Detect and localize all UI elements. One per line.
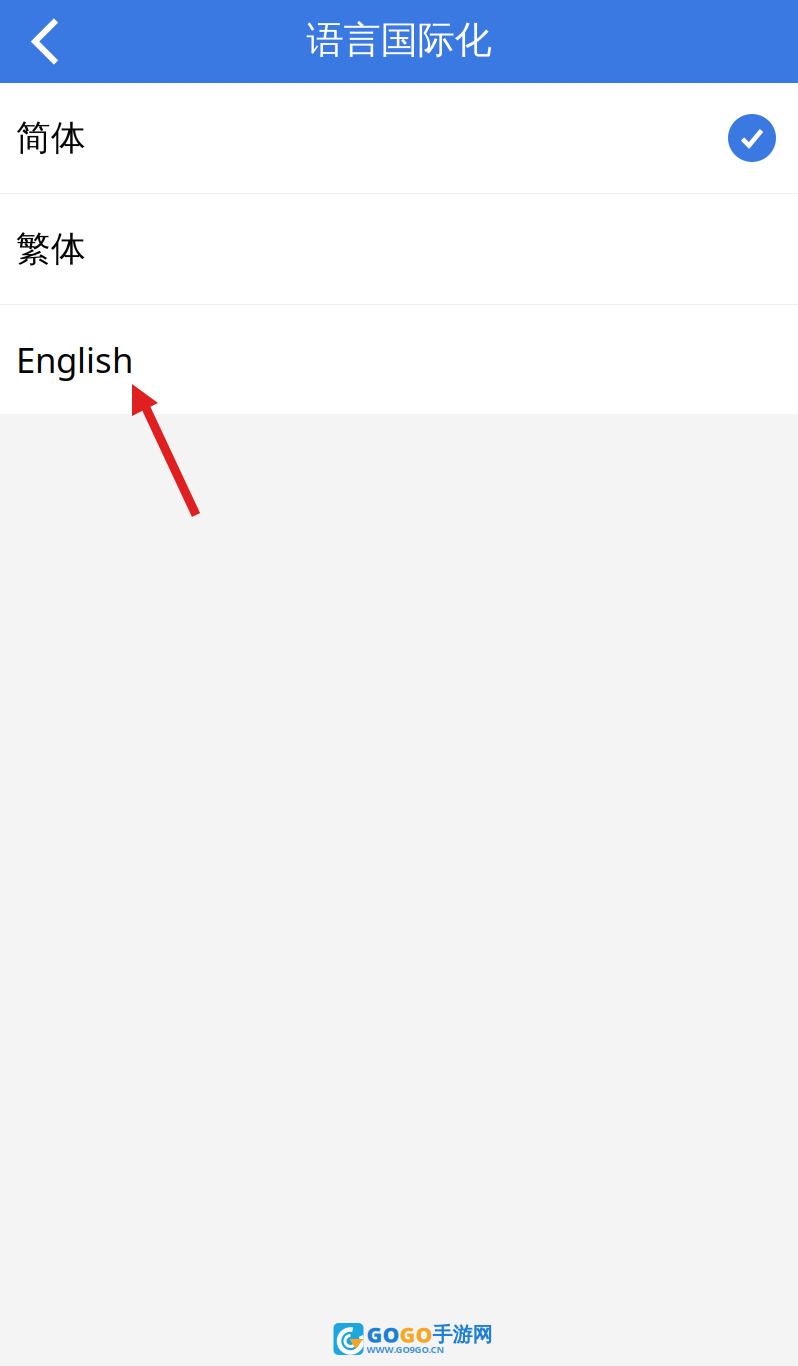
- button[interactable]: 简体: [0, 83, 798, 193]
- staticText: WWW.GO9GO.CN: [366, 1343, 444, 1356]
- staticText: 简体: [16, 117, 86, 159]
- button[interactable]: English: [0, 305, 798, 414]
- staticText: 语言国际化: [306, 17, 491, 63]
- staticText: 手游网: [432, 1322, 492, 1347]
- staticText: English: [16, 336, 133, 382]
- staticText: GO: [399, 1320, 432, 1349]
- button[interactable]: 繁体: [0, 194, 798, 304]
- staticText: 繁体: [16, 228, 86, 270]
- button[interactable]: Back: [0, 0, 60, 83]
- staticText: GO: [366, 1320, 399, 1349]
